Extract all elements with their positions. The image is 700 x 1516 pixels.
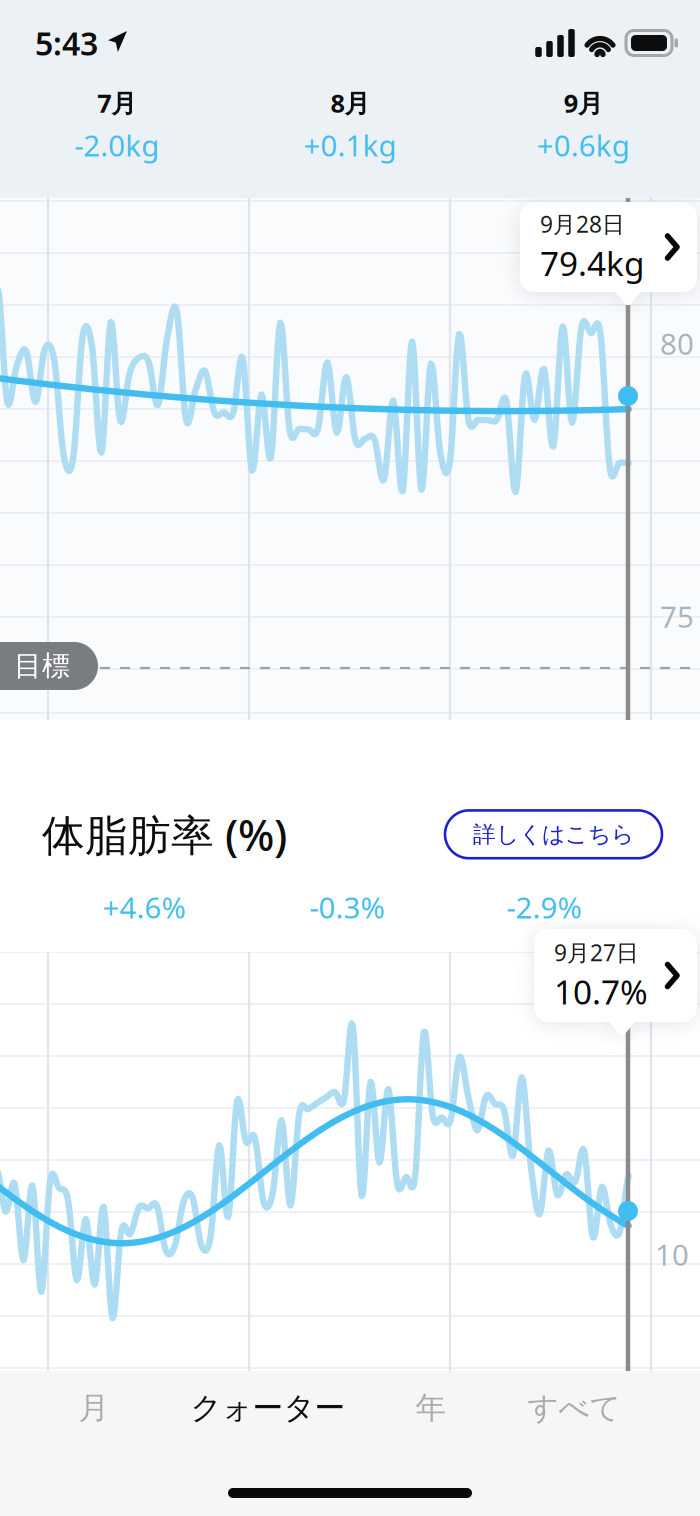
staticText: -2.0kg [74,126,159,165]
button[interactable]: クォーター [188,1371,348,1445]
button[interactable]: 9月28日 [520,202,697,305]
button[interactable]: 月 [0,1371,188,1445]
staticText: 9月27日 [554,937,639,967]
staticText: -0.3% [309,888,384,927]
staticText: 10.7% [554,969,648,1014]
staticText: 詳しくはこちら [473,820,634,848]
button[interactable]: 年 [348,1371,514,1445]
staticText: 79.4kg [540,241,645,285]
staticText: +4.6% [102,888,185,927]
staticText: クォーター [190,1389,345,1427]
staticText: 7月 [97,86,136,120]
staticText: 5:43 [35,22,98,64]
staticText: +0.1kg [303,126,396,165]
button[interactable]: 9月27日 [534,929,697,1035]
staticText: 年 [415,1389,446,1427]
staticText: 体脂肪率 (%) [42,806,287,863]
staticText: 月 [78,1389,109,1427]
staticText: 9月 [564,86,603,120]
staticText: 10 [655,1235,689,1274]
staticText: すべて [527,1389,620,1427]
staticText: 目標 [14,649,70,683]
button[interactable]: すべて [514,1371,634,1445]
staticText: 75 [660,597,694,636]
staticText: -2.9% [506,888,581,927]
staticText: +0.6kg [537,126,630,165]
button[interactable]: 詳しくはこちら [445,810,662,858]
staticText: 80 [660,324,694,363]
staticText: 9月28日 [540,209,625,239]
staticText: 8月 [330,86,369,120]
